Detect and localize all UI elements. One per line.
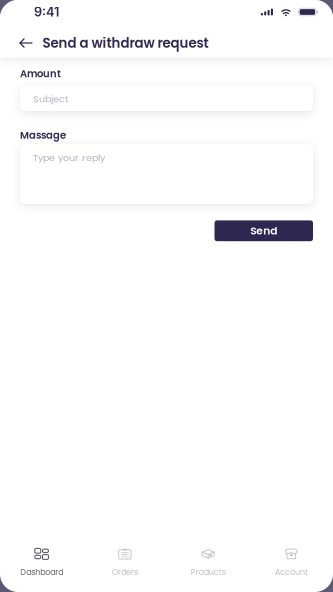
staticText: 9:41 bbox=[34, 4, 59, 20]
staticText: Dashboard bbox=[20, 566, 63, 578]
button[interactable]: Account bbox=[250, 544, 333, 582]
button[interactable]: Orders bbox=[83, 544, 166, 582]
staticText: Massage bbox=[20, 128, 66, 142]
staticText: Orders bbox=[112, 566, 138, 578]
button[interactable]: Send bbox=[214, 220, 313, 241]
staticText: Account bbox=[275, 566, 308, 578]
button[interactable]: Back bbox=[0, 33, 42, 52]
button[interactable]: Dashboard bbox=[0, 544, 83, 582]
staticText: Products bbox=[191, 566, 226, 578]
staticText: Type your reply bbox=[33, 151, 105, 164]
staticText: Subject bbox=[33, 92, 68, 106]
button[interactable]: Products bbox=[166, 544, 250, 582]
staticText: Send bbox=[250, 223, 277, 238]
staticText: Send a withdraw request bbox=[42, 34, 208, 52]
staticText: Amount bbox=[20, 67, 61, 81]
